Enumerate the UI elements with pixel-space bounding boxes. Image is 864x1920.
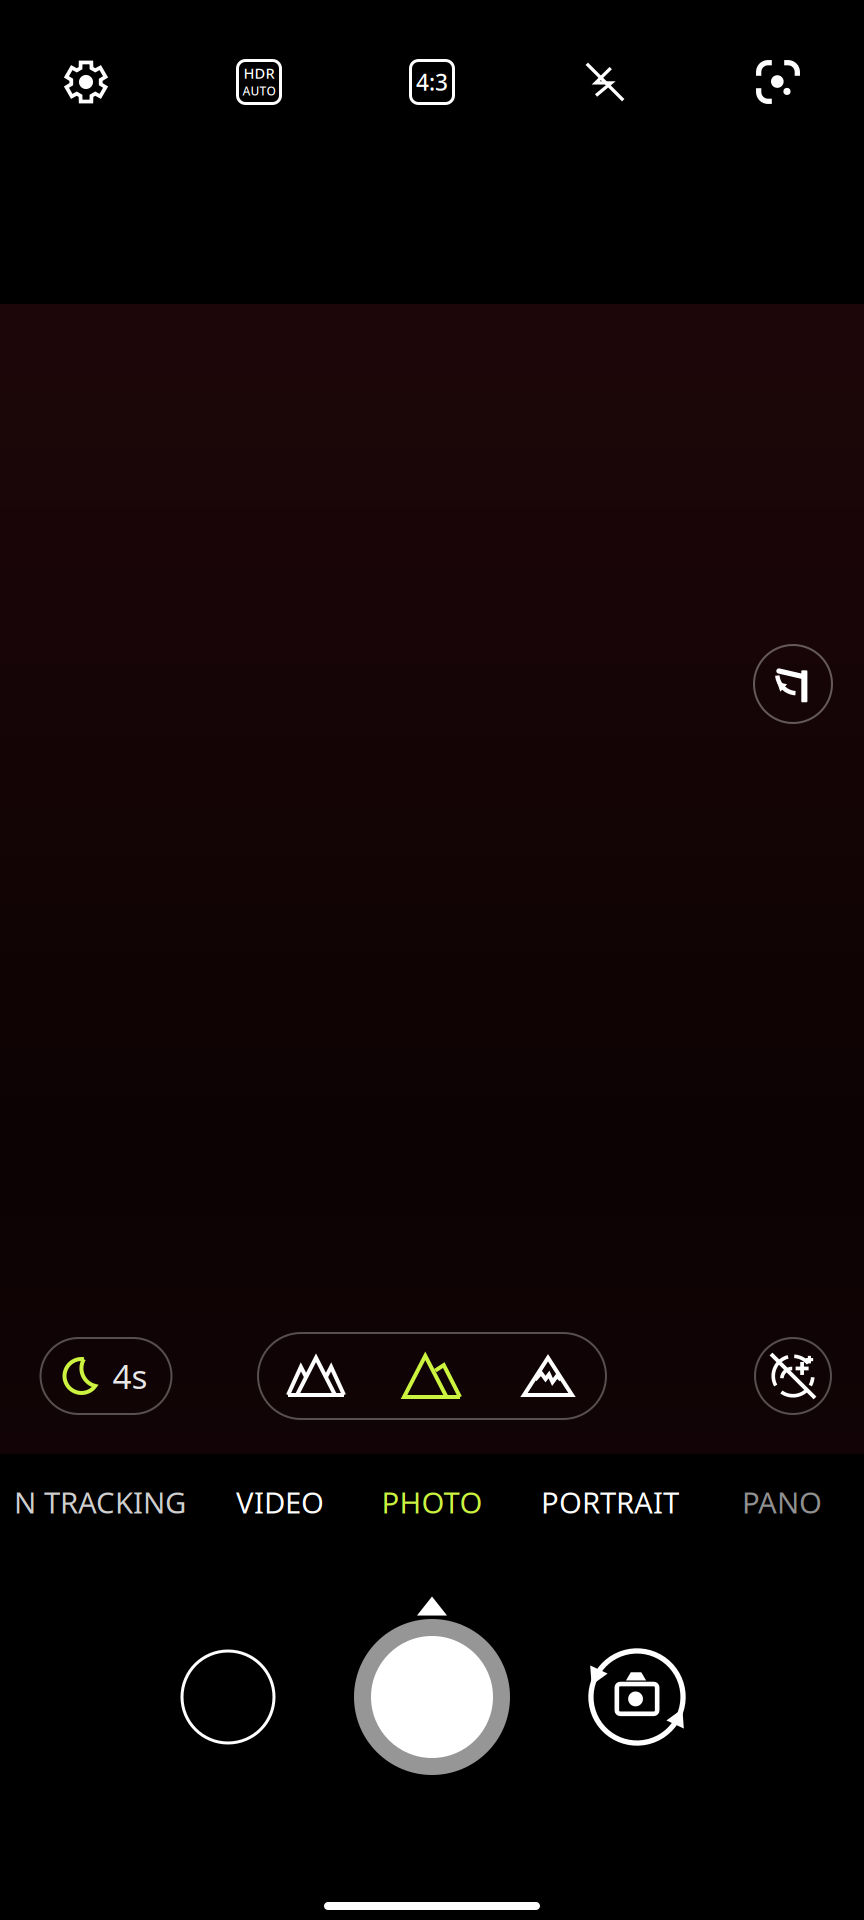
button[interactable]: HDR auto [199,27,319,137]
button[interactable]: Aspect ratio four by three [372,27,492,137]
staticText: 4s [112,1354,147,1398]
staticText: 4:3 [416,67,448,97]
staticText: VIDEO [236,1482,324,1521]
button[interactable]: Night mode, 4 seconds [40,1338,171,1414]
button[interactable]: Settings [26,27,146,137]
staticText: N TRACKING [14,1482,186,1521]
staticText: PORTRAIT [541,1482,679,1521]
button[interactable]: Level guide [747,638,839,730]
button[interactable]: PHOTO [381,1454,482,1550]
button[interactable]: Wide lens [374,1333,490,1419]
button[interactable]: PORTRAIT [541,1454,679,1550]
button[interactable]: Take photo [343,1608,521,1786]
button[interactable]: Telephoto lens [490,1333,606,1419]
button[interactable]: Scan with lens [718,27,838,137]
button[interactable]: VIDEO [236,1454,324,1550]
staticText: AUTO [242,83,275,99]
button[interactable]: Ultra wide lens [258,1333,374,1419]
button[interactable]: Switch camera [572,1632,702,1762]
button[interactable]: Flash off [545,27,665,137]
button[interactable]: Gallery [163,1632,293,1762]
button[interactable]: PANO [742,1454,822,1550]
staticText: PANO [742,1482,822,1521]
staticText: HDR [243,63,274,83]
staticText: PHOTO [381,1482,482,1521]
button[interactable]: AI enhancement off [750,1333,836,1419]
button[interactable]: N TRACKING [14,1454,186,1550]
